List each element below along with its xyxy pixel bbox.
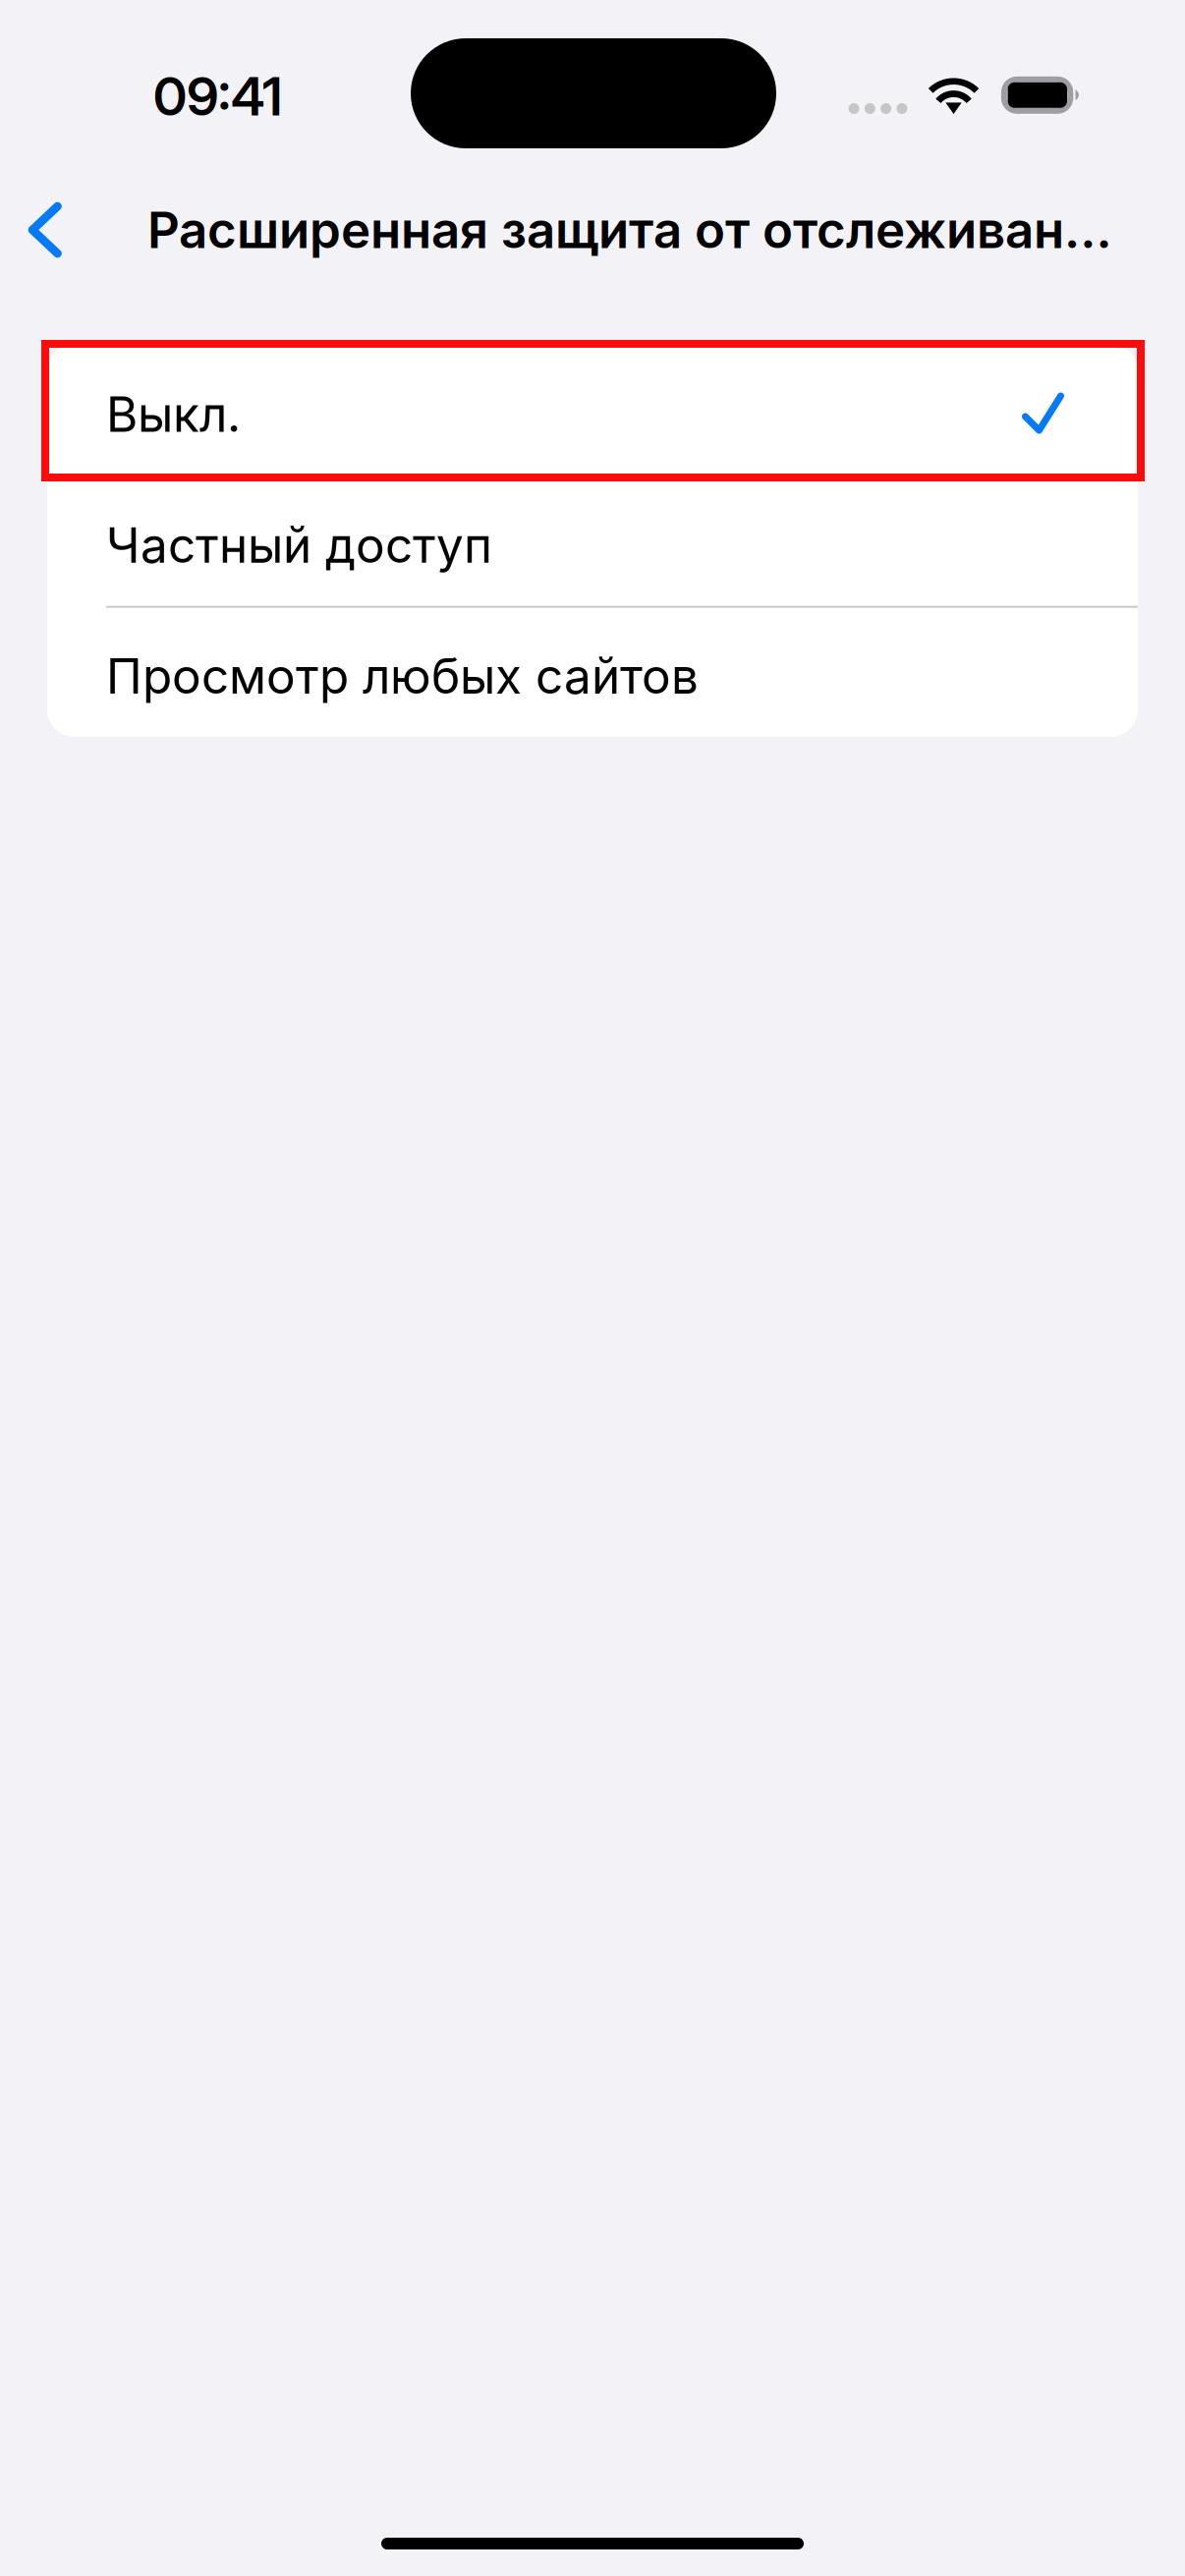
staticText: Расширенная защита от отслеживания: [147, 200, 1115, 260]
staticText: Просмотр любых сайтов: [106, 647, 699, 705]
button[interactable]: Выкл.: [47, 344, 1138, 475]
button[interactable]: Частный доступ: [47, 475, 1138, 606]
staticText: Выкл.: [106, 385, 241, 443]
staticText: 09:41: [153, 64, 282, 128]
staticText: Частный доступ: [106, 516, 492, 574]
button[interactable]: Назад: [0, 165, 124, 295]
button[interactable]: Просмотр любых сайтов: [47, 606, 1138, 737]
